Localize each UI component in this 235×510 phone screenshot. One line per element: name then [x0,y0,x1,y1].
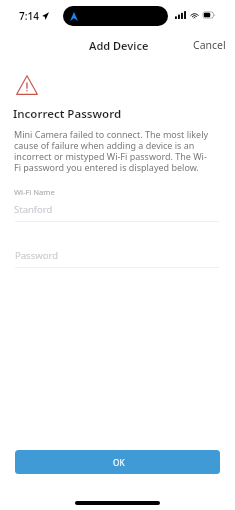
button[interactable]: Cancel [193,38,226,52]
staticText: Wi-Fi Name [14,187,55,197]
staticText: Stanford [14,203,53,216]
staticText: Mini Camera failed to connect. The most … [14,128,211,174]
button[interactable]: Password [14,245,219,268]
staticText: 7:14 [19,9,39,23]
staticText: Add Device [89,38,149,53]
button[interactable]: OK [15,450,220,474]
button[interactable]: Wi-Fi Name [14,185,219,222]
staticText: OK [113,457,125,468]
staticText: Incorrect Password [13,106,122,122]
staticText: Password [15,249,58,262]
staticText: Cancel [193,38,226,52]
